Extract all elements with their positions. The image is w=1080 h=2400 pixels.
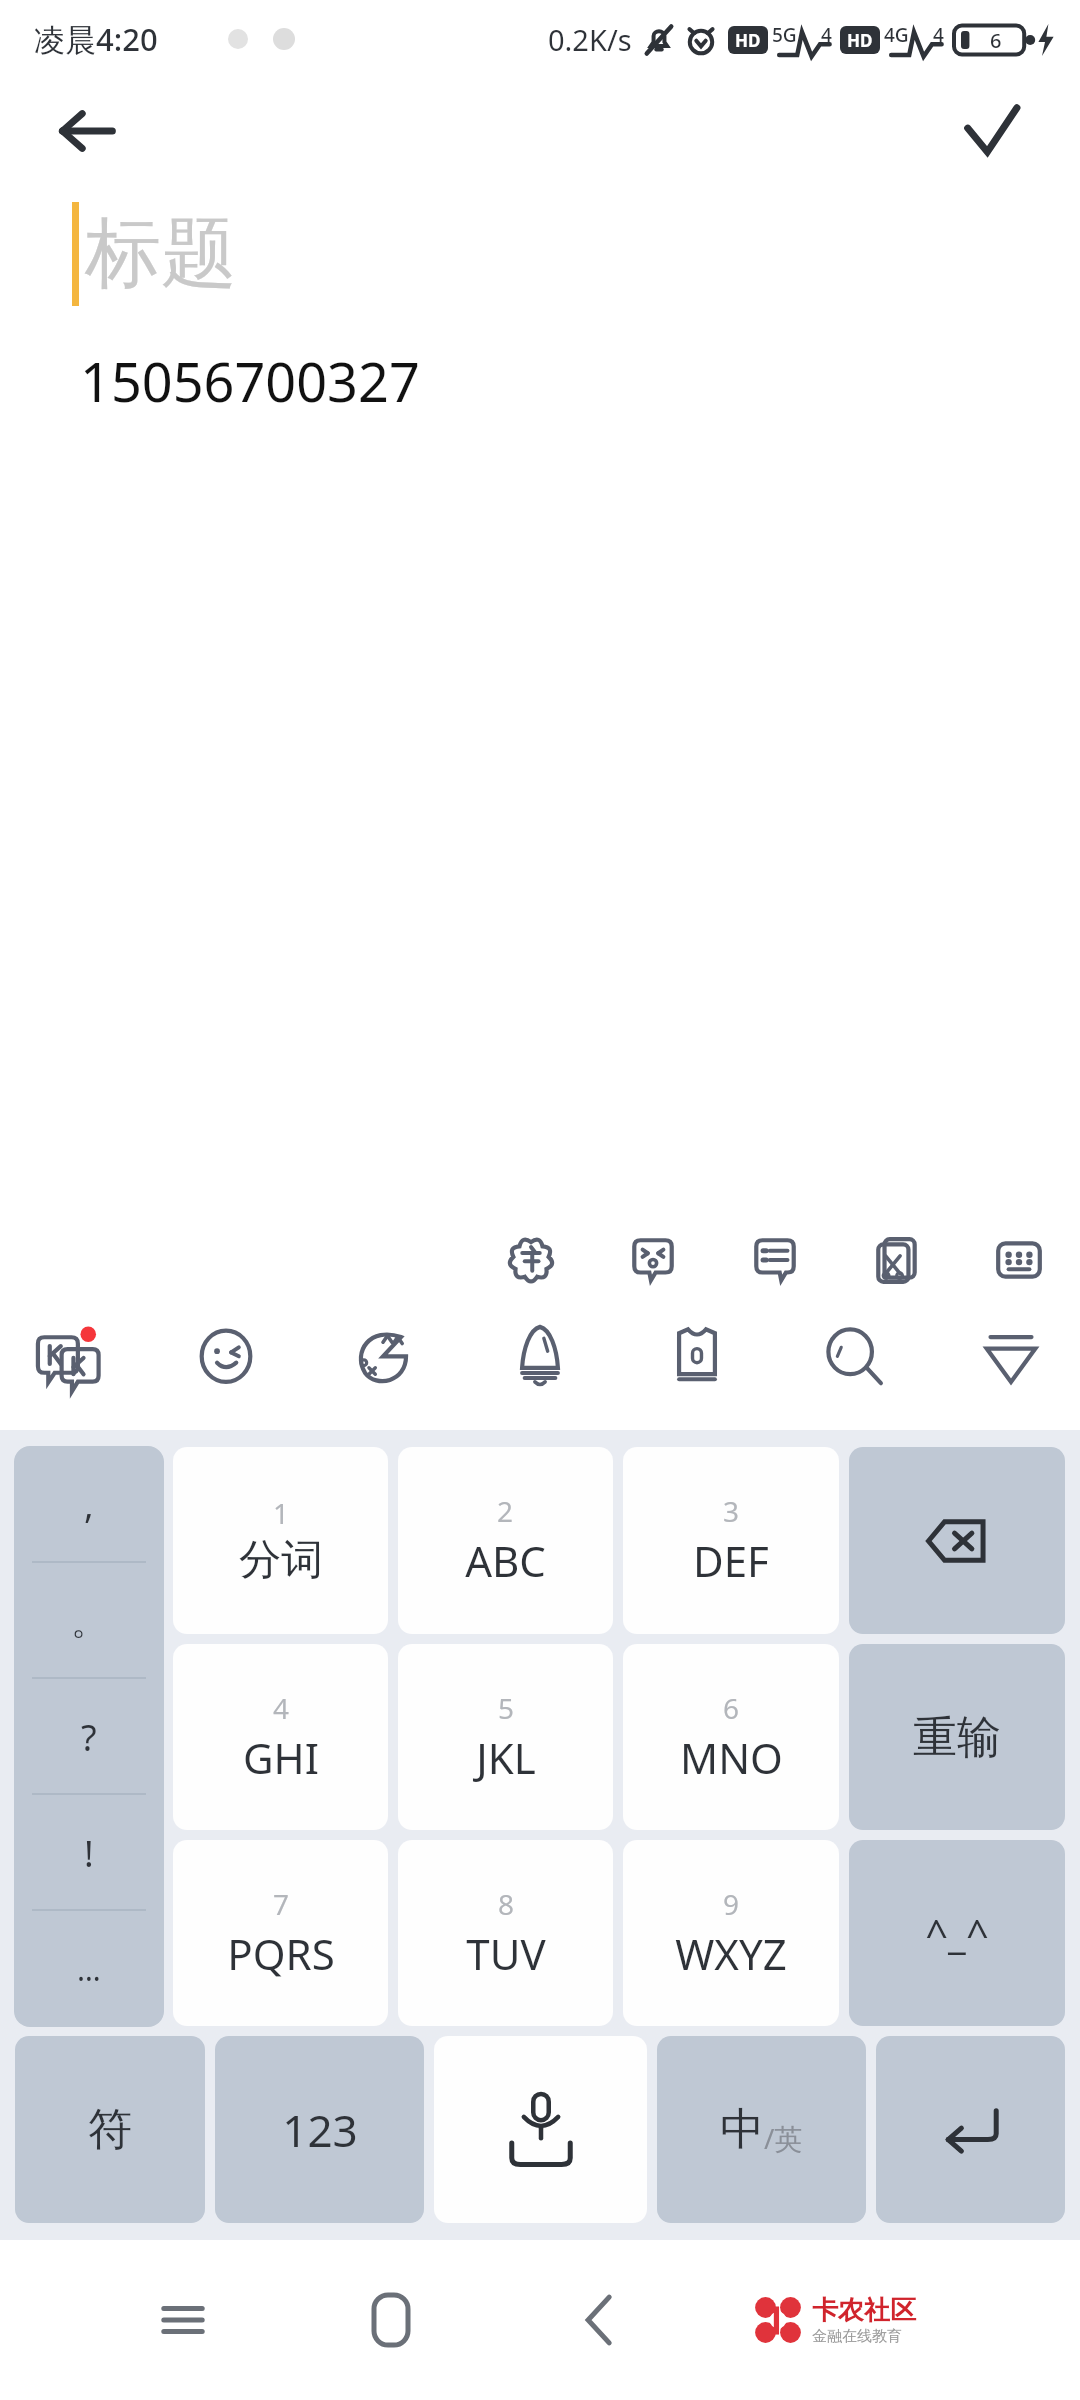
staticText: 123 (282, 2100, 358, 2160)
staticText: 6 (723, 1689, 740, 1727)
button[interactable]: Phrases (742, 1227, 808, 1293)
staticText: 标题 (85, 206, 237, 302)
staticText: ^_^ (925, 1906, 989, 1960)
staticText: 7 (273, 1885, 290, 1923)
button[interactable]: Back (40, 83, 136, 179)
button[interactable]: Home (336, 2265, 446, 2375)
staticText: 9 (723, 1885, 740, 1923)
staticText: 中 (720, 2102, 764, 2157)
staticText: 2 (497, 1492, 514, 1530)
staticText: /英 (764, 2119, 803, 2157)
button[interactable]: , (14, 1446, 164, 1563)
staticText: 4 (821, 22, 832, 48)
staticText: 4G (884, 22, 909, 48)
staticText: 0.2K/s (548, 20, 632, 59)
button[interactable]: Delete (849, 1447, 1065, 1634)
staticText: PQRS (227, 1925, 335, 1982)
staticText: 凌晨4:20 (34, 18, 158, 60)
staticText: 5 (498, 1689, 515, 1727)
button[interactable]: Back (544, 2265, 654, 2375)
staticText: 15056700327 (80, 344, 420, 418)
staticText: MNO (680, 1729, 783, 1786)
button[interactable]: 1 (173, 1447, 388, 1634)
button[interactable]: Clipboard (864, 1227, 930, 1293)
staticText: … (77, 1949, 101, 1990)
staticText: ? (81, 1713, 97, 1762)
button[interactable]: 5 (398, 1644, 613, 1830)
button[interactable]: … (14, 1911, 164, 2027)
button[interactable]: 2 (398, 1447, 613, 1634)
staticText: , (84, 1480, 94, 1529)
button[interactable]: 9 (623, 1840, 839, 2026)
staticText: 1 (273, 1494, 290, 1532)
staticText: TUV (466, 1925, 546, 1982)
button[interactable]: Input method (26, 1312, 112, 1398)
button[interactable]: Emoticon (620, 1227, 686, 1293)
button[interactable]: 8 (398, 1840, 613, 2026)
button[interactable]: 6 (623, 1644, 839, 1830)
staticText: 。 (71, 1599, 107, 1644)
staticText: GHI (243, 1729, 319, 1786)
button[interactable]: 中 (657, 2036, 866, 2223)
button[interactable]: Search (811, 1312, 897, 1398)
button[interactable]: 3 (623, 1447, 839, 1634)
button[interactable]: Font style (498, 1227, 564, 1293)
button[interactable]: 符 (15, 2036, 205, 2223)
button[interactable]: Collapse (968, 1312, 1054, 1398)
button[interactable]: Confirm (944, 83, 1040, 179)
button[interactable]: 重输 (849, 1644, 1065, 1830)
button[interactable]: Space (434, 2036, 647, 2223)
button[interactable]: ^_^ (849, 1840, 1065, 2026)
staticText: 金融在线教育 (812, 2327, 902, 2346)
button[interactable]: Emoji (183, 1312, 269, 1398)
staticText: HD (735, 29, 761, 52)
staticText: 4 (273, 1689, 290, 1727)
button[interactable]: ! (14, 1795, 164, 1911)
button[interactable]: Notification (497, 1312, 583, 1398)
staticText: 8 (498, 1885, 515, 1923)
button[interactable]: Stickers (340, 1312, 426, 1398)
staticText: 卡农社区 (812, 2294, 916, 2327)
staticText: 分词 (239, 1534, 323, 1587)
button[interactable]: 。 (14, 1563, 164, 1679)
button[interactable]: ? (14, 1679, 164, 1795)
staticText: 6 (990, 27, 1002, 54)
button[interactable]: 123 (215, 2036, 424, 2223)
staticText: WXYZ (675, 1925, 787, 1982)
button[interactable]: Recents (128, 2265, 238, 2375)
staticText: 4 (933, 22, 944, 48)
staticText: HD (847, 29, 873, 52)
staticText: 5G (772, 22, 797, 48)
button[interactable]: 7 (173, 1840, 388, 2026)
button[interactable]: Keyboard layout (986, 1227, 1052, 1293)
staticText: 符 (88, 2102, 132, 2157)
staticText: DEF (693, 1532, 769, 1589)
staticText: ! (84, 1829, 94, 1878)
staticText: 重输 (913, 1710, 1001, 1765)
staticText: ABC (465, 1532, 546, 1589)
staticText: JKL (476, 1729, 536, 1786)
button[interactable]: Enter (876, 2036, 1065, 2223)
button[interactable]: Skins (654, 1312, 740, 1398)
staticText: 3 (723, 1492, 740, 1530)
button[interactable]: 4 (173, 1644, 388, 1830)
